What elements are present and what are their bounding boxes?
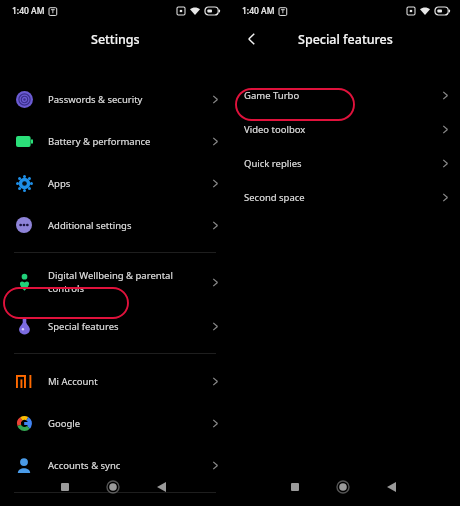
staticText: Additional settings [48, 219, 132, 232]
staticText: Battery & performance [48, 135, 151, 148]
button[interactable]: Back [148, 474, 174, 500]
staticText: 1:40 AM [242, 5, 275, 17]
staticText: Special features [298, 31, 393, 48]
button[interactable]: Digital Wellbeing & parental controls [0, 259, 230, 305]
button[interactable]: Battery & performance [0, 120, 230, 162]
staticText: Game Turbo [244, 89, 300, 102]
staticText: Google [48, 417, 81, 430]
button[interactable]: Back [238, 25, 266, 53]
staticText: Passwords & security [48, 93, 143, 106]
staticText: Special features [48, 320, 119, 333]
staticText: Accounts & sync [48, 459, 121, 472]
button[interactable]: Google [0, 402, 230, 444]
button[interactable]: Additional settings [0, 204, 230, 246]
button[interactable]: Accounts & sync [0, 444, 230, 486]
button[interactable]: Game Turbo [230, 78, 460, 112]
staticText: Video toolbox [244, 123, 306, 136]
staticText: Digital Wellbeing & parental controls [48, 269, 173, 295]
button[interactable]: Special features [0, 305, 230, 347]
button[interactable]: Home [330, 474, 356, 500]
staticText: Apps [48, 177, 71, 190]
button[interactable]: Mi Account [0, 360, 230, 402]
button[interactable]: Home [100, 474, 126, 500]
button[interactable]: Quick replies [230, 146, 460, 180]
staticText: 1:40 AM [12, 5, 45, 17]
staticText: Settings [91, 31, 140, 48]
button[interactable]: Recents [52, 474, 78, 500]
button[interactable]: Second space [230, 180, 460, 214]
button[interactable]: Passwords & security [0, 78, 230, 120]
button[interactable]: Apps [0, 162, 230, 204]
staticText: Mi Account [48, 375, 98, 388]
button[interactable]: Back [378, 474, 404, 500]
button[interactable]: Video toolbox [230, 112, 460, 146]
button[interactable]: Recents [282, 474, 308, 500]
staticText: Quick replies [244, 157, 302, 170]
staticText: Second space [244, 191, 305, 204]
